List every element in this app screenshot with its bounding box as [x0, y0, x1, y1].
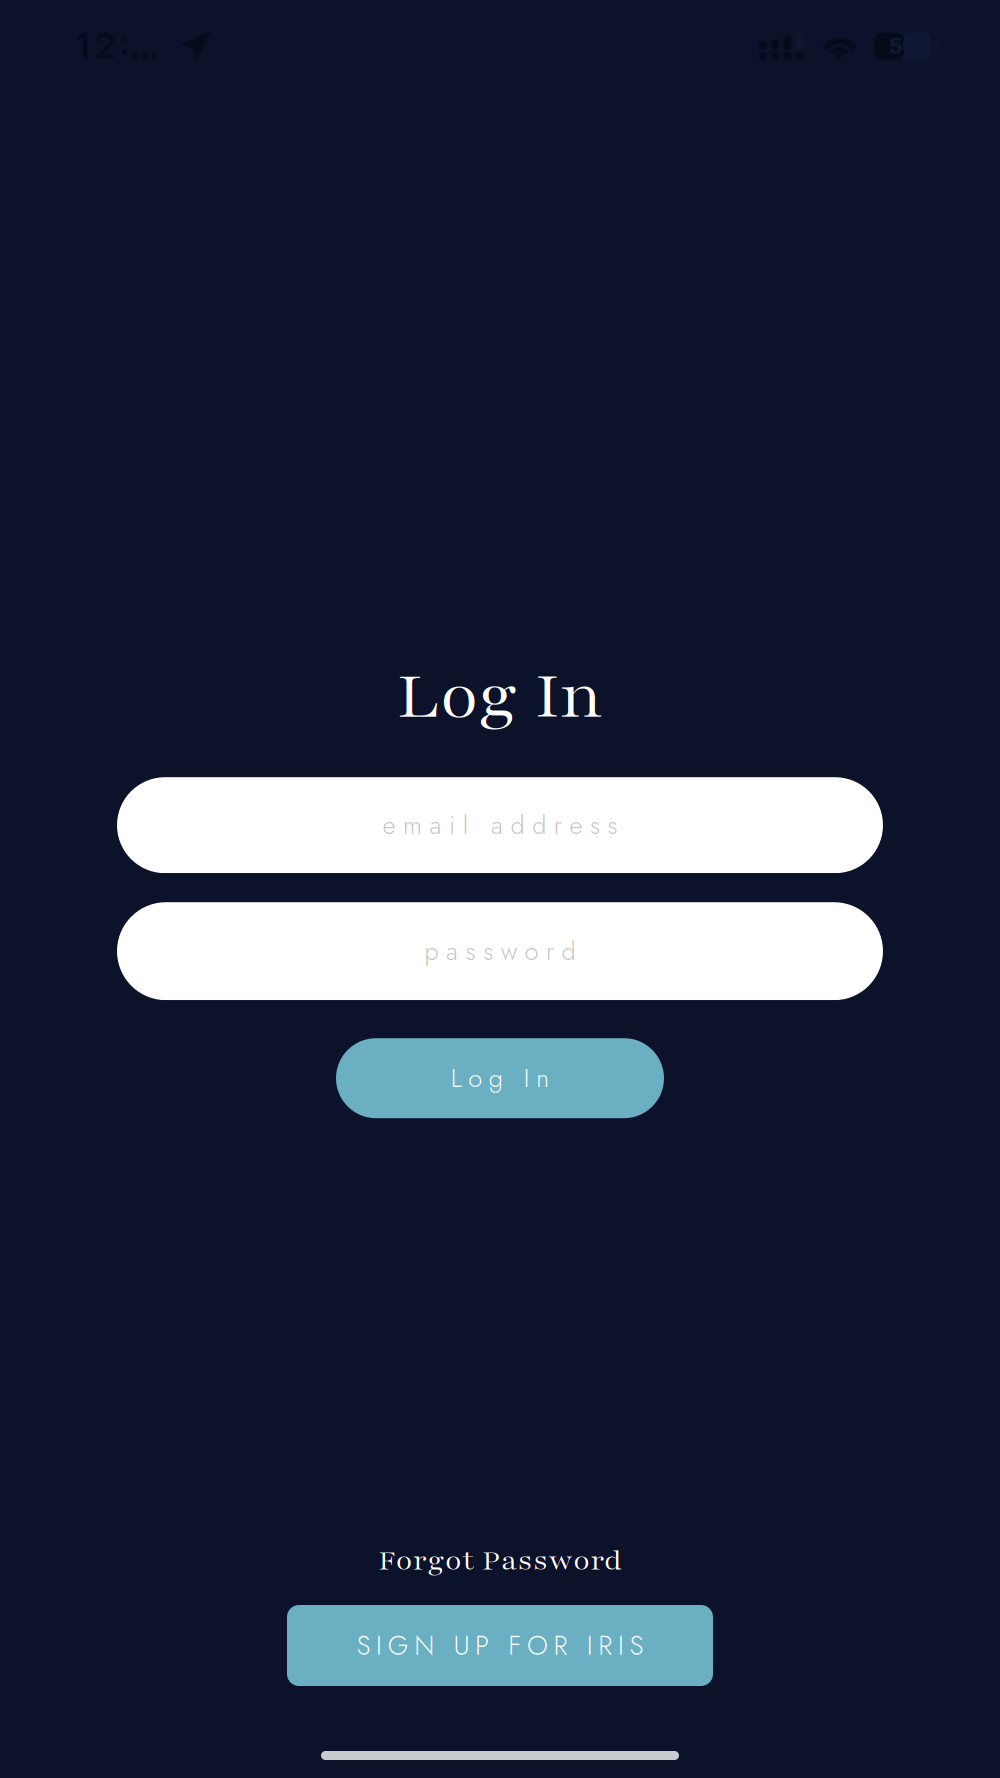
button[interactable]: Log In: [336, 1038, 664, 1118]
staticText: 12:16: [76, 25, 168, 67]
staticText: Log In: [396, 655, 603, 738]
button[interactable]: Forgot Password: [378, 1543, 622, 1579]
button[interactable]: SIGN UP FOR IRIS: [287, 1605, 713, 1686]
button[interactable]: email address: [117, 777, 883, 873]
staticText: email address: [382, 807, 618, 843]
staticText: password: [424, 933, 576, 969]
staticText: SIGN UP FOR IRIS: [356, 1626, 643, 1665]
staticText: 50: [889, 33, 916, 59]
button[interactable]: password: [117, 902, 883, 1000]
staticText: Log In: [451, 1060, 549, 1096]
staticText: Forgot Password: [378, 1543, 622, 1579]
